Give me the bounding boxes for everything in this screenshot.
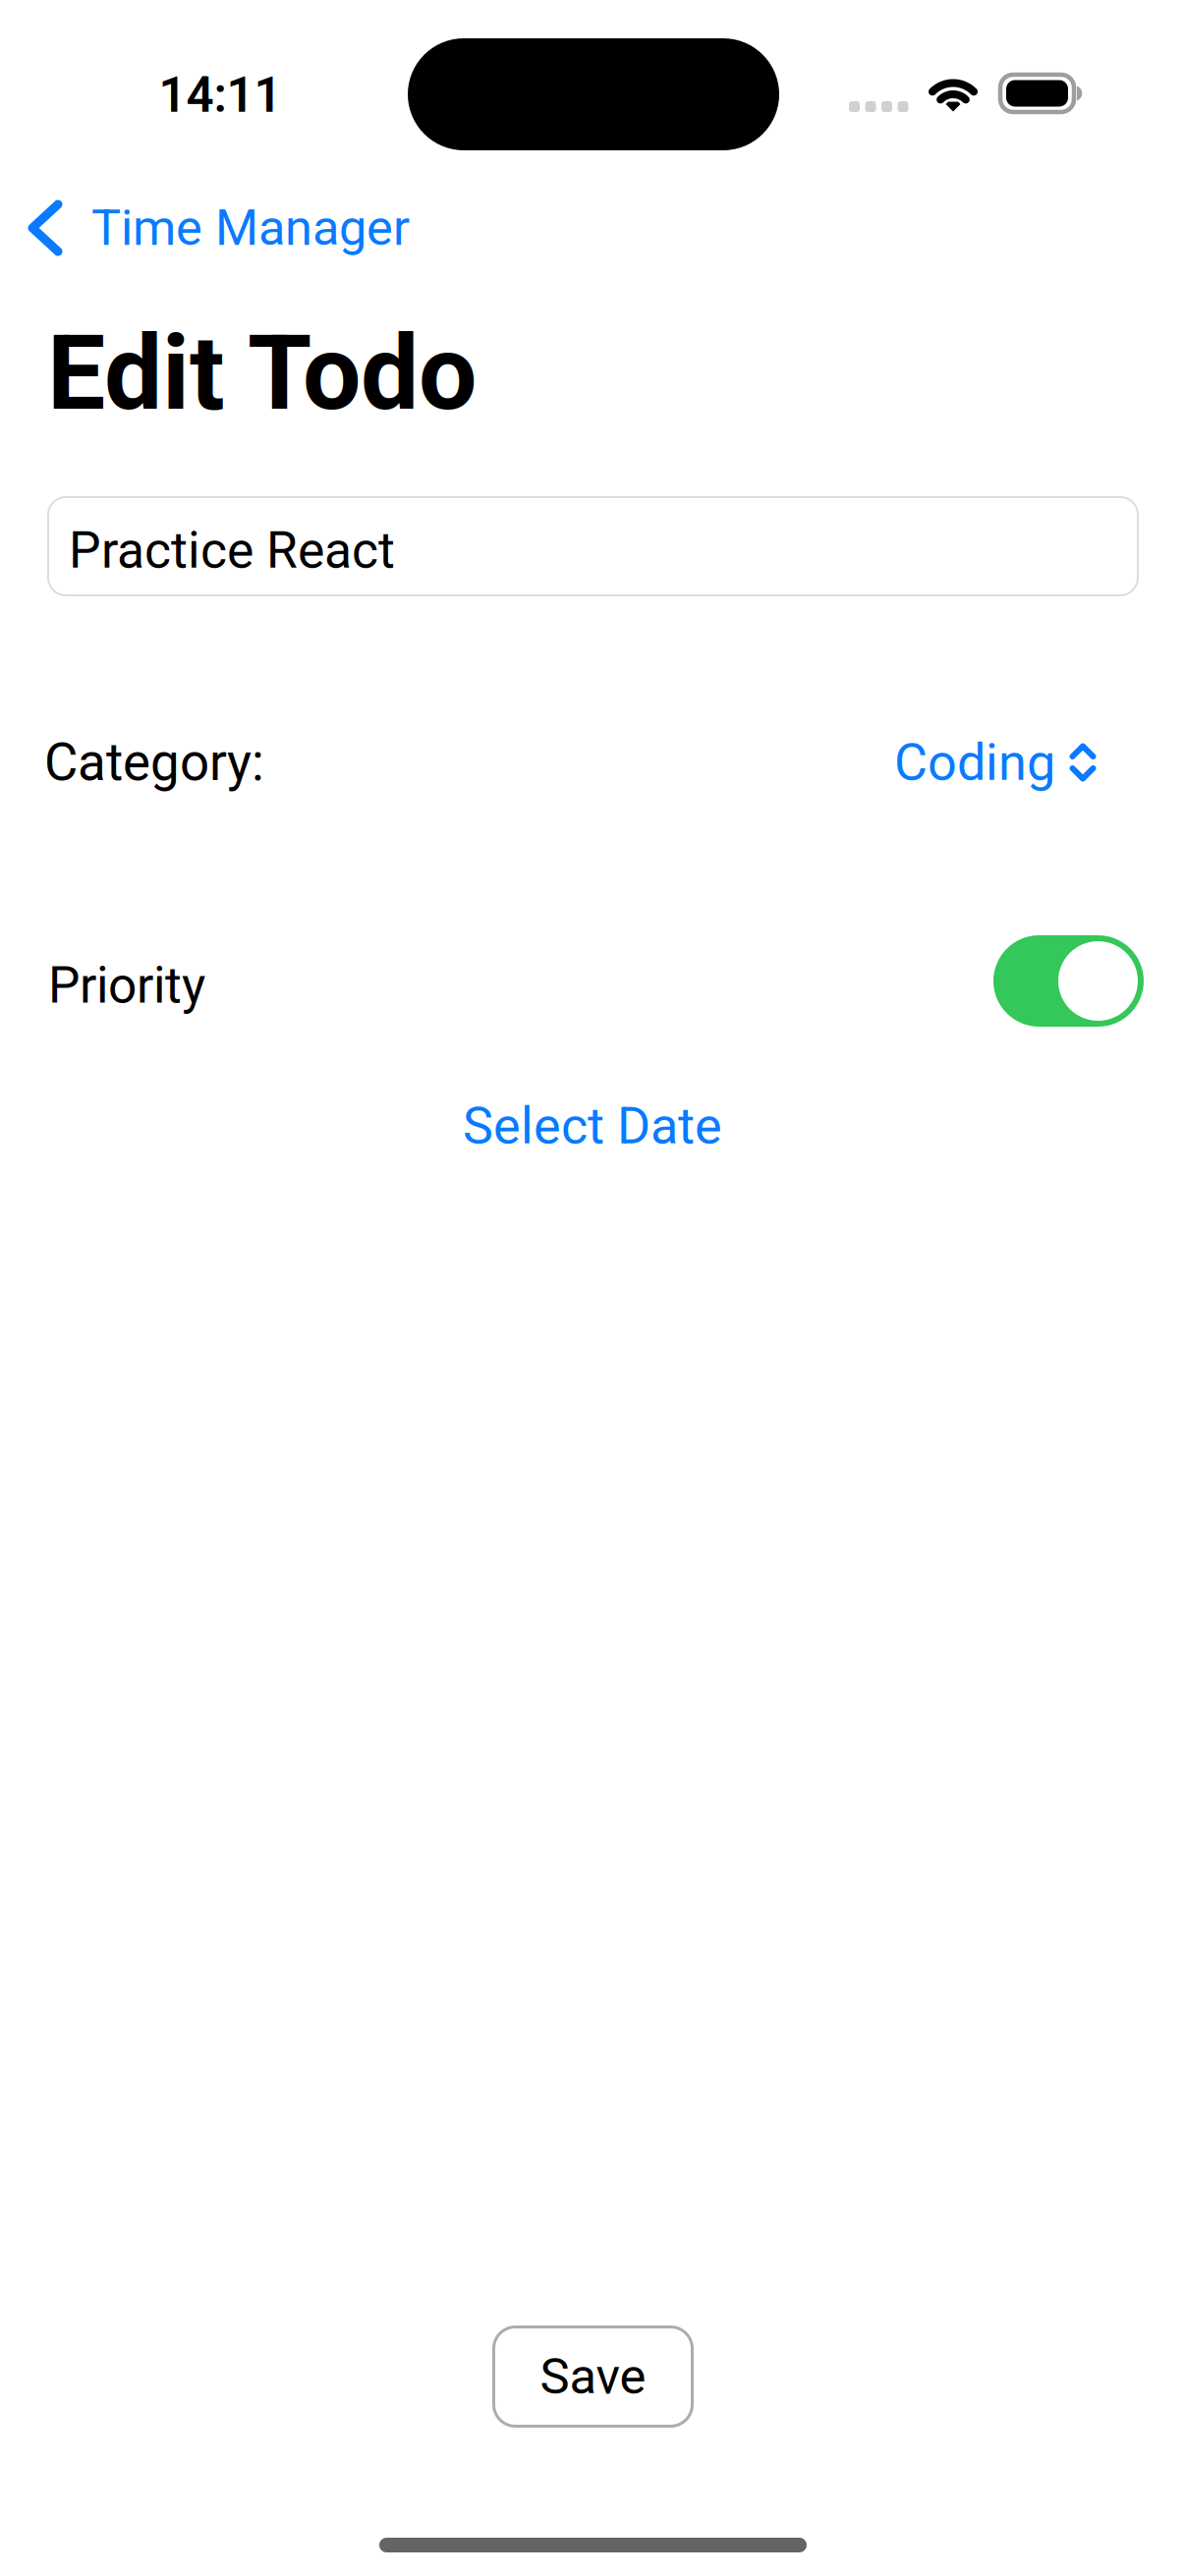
staticText: Coding: [894, 732, 1055, 792]
staticText: 14:11: [159, 67, 282, 124]
staticText: Save: [540, 2347, 646, 2406]
staticText: Practice React: [69, 521, 395, 580]
staticText: Edit Todo: [47, 313, 477, 434]
staticText: Time Manager: [91, 199, 410, 257]
button[interactable]: Time Manager: [26, 193, 536, 263]
button[interactable]: Select Date: [396, 1094, 789, 1157]
staticText: Priority: [48, 956, 205, 1015]
button[interactable]: Practice React: [48, 497, 1138, 595]
button[interactable]: Priority: [993, 935, 1144, 1027]
staticText: Select Date: [463, 1096, 722, 1156]
button[interactable]: Save: [492, 2325, 694, 2428]
button[interactable]: Coding: [894, 731, 1097, 794]
staticText: Category:: [44, 732, 264, 793]
